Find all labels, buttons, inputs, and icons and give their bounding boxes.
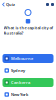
staticText: New York xyxy=(11,92,28,97)
button[interactable]: Canberra xyxy=(2,78,53,87)
button[interactable]: Bookmark xyxy=(46,3,49,6)
staticText: Sydney xyxy=(11,68,25,73)
button[interactable]: Quiz xyxy=(0,2,15,7)
button[interactable]: New York xyxy=(2,90,53,99)
button[interactable]: More xyxy=(49,3,56,6)
staticText: What is the capital city of Australia? xyxy=(3,25,52,36)
button[interactable]: Melbourne xyxy=(2,54,53,63)
staticText: Quiz xyxy=(6,2,15,7)
button[interactable]: Sydney xyxy=(2,66,53,75)
staticText: Canberra xyxy=(11,80,30,85)
staticText: Melbourne xyxy=(11,56,33,61)
